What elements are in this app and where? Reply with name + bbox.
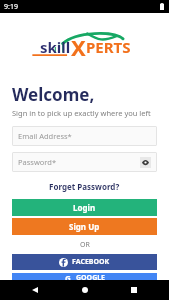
button[interactable]: Email Address* — [12, 126, 157, 146]
staticText: 9:19 — [4, 2, 18, 12]
staticText: OR — [80, 240, 90, 250]
staticText: Login — [73, 202, 96, 213]
staticText: Password* — [18, 157, 140, 167]
button[interactable]: Login — [12, 199, 157, 216]
button[interactable]: Show password — [140, 157, 151, 168]
button[interactable]: Home — [70, 280, 100, 300]
staticText: Email Address* — [18, 131, 151, 141]
staticText: Sign in to pick up exactly where you lef… — [12, 108, 151, 118]
staticText: Sign Up — [69, 221, 100, 232]
staticText: G — [65, 273, 71, 280]
staticText: Welcome, — [12, 83, 95, 106]
staticText: skill — [40, 37, 71, 57]
staticText: Forget Password? — [49, 181, 120, 192]
button[interactable]: Back — [20, 280, 50, 300]
staticText: FACEBOOK — [72, 257, 110, 267]
button[interactable]: Recent apps — [119, 280, 149, 300]
button[interactable]: Forget Password? — [47, 179, 122, 194]
button[interactable]: G — [12, 273, 157, 280]
button[interactable]: Sign Up — [12, 218, 157, 235]
staticText: GOOGLE — [76, 273, 106, 280]
button[interactable]: FACEBOOK — [12, 254, 157, 270]
staticText: PERTS — [86, 37, 131, 57]
button[interactable]: Password* — [12, 152, 157, 172]
staticText: X — [71, 32, 86, 62]
